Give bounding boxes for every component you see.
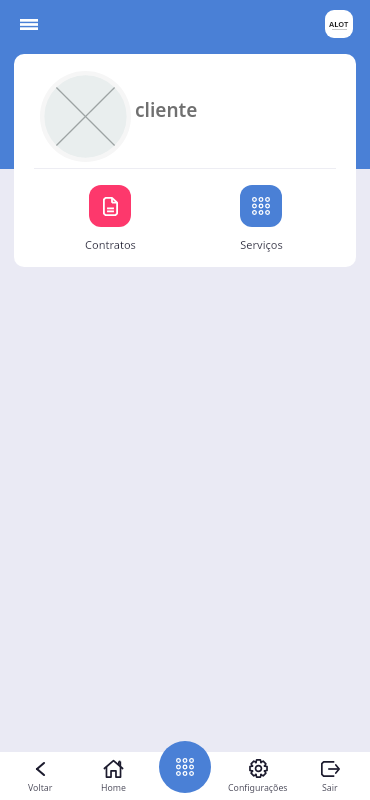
staticText: ALOT bbox=[329, 19, 349, 29]
staticText: cliente bbox=[135, 97, 198, 123]
button[interactable]: Menu bbox=[10, 6, 47, 43]
button[interactable]: Serviços bbox=[185, 185, 336, 252]
staticText: Contratos bbox=[85, 237, 136, 252]
button[interactable]: Apps bbox=[159, 741, 211, 793]
staticText: Serviços bbox=[240, 237, 283, 252]
staticText: Sair bbox=[322, 782, 338, 794]
button[interactable]: Configurações bbox=[222, 752, 294, 800]
button[interactable]: ALOT logo bbox=[325, 10, 353, 38]
button[interactable]: Voltar bbox=[4, 752, 77, 800]
staticText: Configurações bbox=[228, 782, 288, 794]
button[interactable]: Contratos bbox=[34, 185, 185, 252]
staticText: Home bbox=[101, 782, 127, 794]
staticText: Voltar bbox=[28, 782, 53, 794]
button[interactable]: Home bbox=[77, 752, 150, 800]
button[interactable]: Sair bbox=[294, 752, 366, 800]
